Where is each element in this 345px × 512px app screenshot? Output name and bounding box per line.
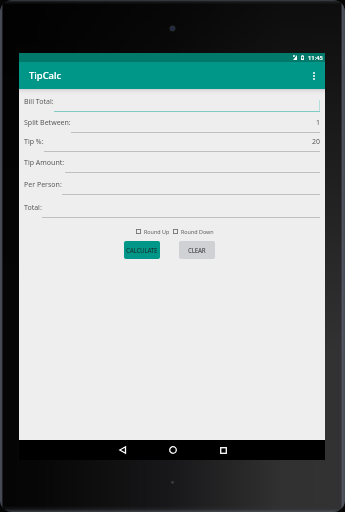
staticText: Tip Amount:: [24, 158, 65, 168]
staticText: [54, 97, 320, 107]
staticText: CLEAR: [188, 246, 206, 254]
staticText: Tip %:: [24, 137, 44, 147]
staticText: Split Between:: [24, 118, 71, 128]
button[interactable]: 20: [44, 137, 320, 147]
staticText: 20: [44, 137, 320, 147]
button[interactable]: CALCULATE: [124, 241, 160, 259]
button[interactable]: 1: [71, 118, 320, 128]
button[interactable]: Recents: [212, 440, 234, 460]
staticText: 1: [71, 118, 320, 128]
staticText: Round Down: [181, 228, 214, 235]
staticText: Total:: [24, 203, 42, 213]
button[interactable]: CLEAR: [179, 241, 215, 259]
button[interactable]: [54, 97, 320, 108]
button[interactable]: Round Up: [136, 229, 170, 236]
staticText: 11:45: [308, 54, 323, 62]
staticText: Per Person:: [24, 180, 62, 190]
button[interactable]: Round Down: [173, 229, 214, 236]
staticText: CALCULATE: [126, 246, 158, 254]
button[interactable]: Back: [111, 440, 133, 460]
staticText: Round Up: [144, 228, 170, 235]
staticText: Bill Total:: [24, 97, 54, 107]
staticText: TipCalc: [29, 69, 62, 82]
button[interactable]: More options: [302, 62, 325, 89]
button[interactable]: Home: [162, 440, 184, 460]
